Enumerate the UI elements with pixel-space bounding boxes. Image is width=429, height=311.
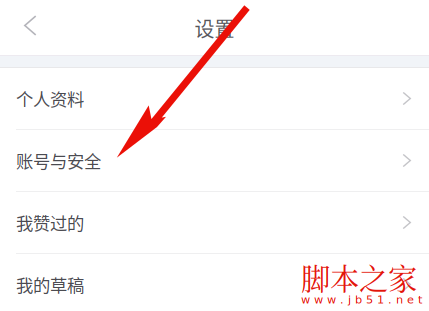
staticText: 账号与安全	[16, 148, 101, 173]
staticText: 脚本之家	[301, 256, 417, 298]
button[interactable]: 个人资料	[0, 68, 429, 130]
staticText: 设置	[194, 13, 234, 42]
button[interactable]: 我的草稿	[0, 254, 429, 311]
staticText: w w w . j b 5 1 . n e t	[301, 293, 422, 306]
staticText: 我赞过的	[16, 210, 84, 235]
staticText: 个人资料	[16, 86, 84, 111]
button[interactable]: 我赞过的	[0, 192, 429, 254]
button[interactable]: 账号与安全	[0, 130, 429, 192]
button[interactable]: Back	[0, 0, 54, 55]
staticText: 我的草稿	[16, 272, 84, 297]
